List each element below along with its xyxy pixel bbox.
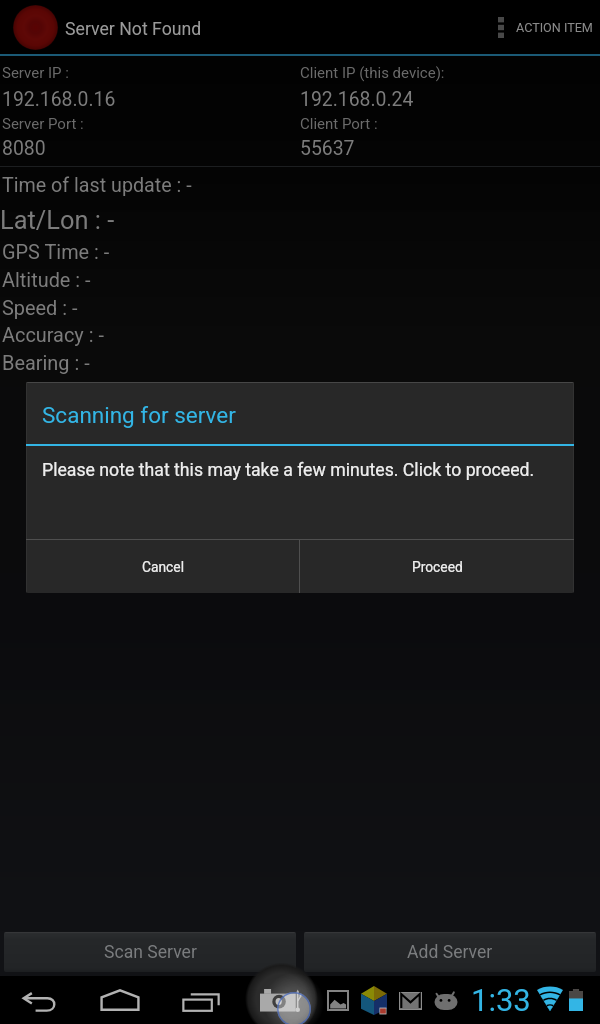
button[interactable]: More options (490, 0, 598, 54)
staticText: 8080 (2, 137, 46, 160)
other: Drive (361, 986, 387, 1015)
other: System notification (434, 991, 458, 1011)
other: More options (498, 17, 504, 38)
staticText: Proceed (412, 559, 463, 575)
staticText: Bearing : - (2, 352, 90, 375)
staticText: 192.168.0.24 (300, 88, 414, 111)
staticText: Server Not Found (65, 19, 202, 40)
other: Wi-Fi (537, 990, 563, 1011)
staticText: Time of last update : - (2, 174, 192, 197)
button[interactable]: Recent apps (171, 976, 231, 1024)
button[interactable]: Scan Server (4, 932, 296, 972)
staticText: 1:33 (471, 982, 531, 1018)
staticText: Client Port : (300, 115, 378, 133)
staticText: 55637 (300, 137, 355, 160)
other: USB connected (260, 989, 301, 1012)
staticText: Please note that this may take a few min… (42, 460, 535, 481)
staticText: Accuracy : - (2, 324, 104, 347)
staticText: Altitude : - (2, 269, 91, 292)
button[interactable]: Proceed (300, 540, 574, 593)
staticText: GPS Time : - (2, 241, 110, 264)
staticText: Add Server (407, 942, 493, 963)
button[interactable]: Home (90, 976, 150, 1024)
staticText: Lat/Lon : - (0, 205, 115, 235)
staticText: Cancel (142, 559, 184, 575)
other: Screenshot (327, 990, 349, 1011)
staticText: Speed : - (2, 297, 78, 320)
other: Gmail (399, 992, 422, 1010)
staticText: Client IP (this device): (300, 64, 445, 82)
staticText: Server IP : (2, 64, 69, 82)
staticText: Scan Server (104, 942, 197, 963)
staticText: Server Port : (2, 115, 84, 133)
button[interactable]: Back (10, 976, 70, 1024)
button[interactable]: Add Server (304, 932, 596, 972)
other: Battery (569, 989, 583, 1011)
staticText: Scanning for server (42, 402, 236, 428)
staticText: 192.168.0.16 (2, 88, 116, 111)
staticText: ACTION ITEM (516, 20, 593, 35)
button[interactable]: Cancel (26, 540, 299, 593)
